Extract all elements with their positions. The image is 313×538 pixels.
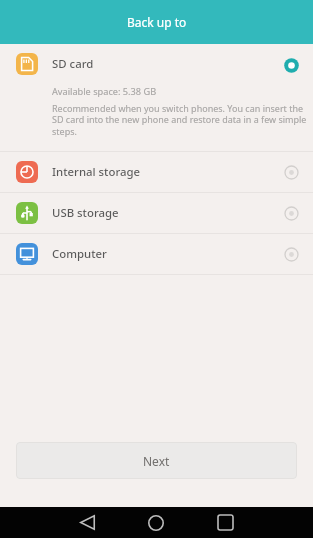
button[interactable]: Next bbox=[16, 442, 297, 479]
button[interactable]: SD card bbox=[0, 44, 313, 152]
staticText: Available space: 5.38 GB bbox=[52, 85, 157, 98]
staticText: Recommended when you switch phones. You … bbox=[52, 102, 307, 138]
staticText: USB storage bbox=[52, 205, 119, 221]
button[interactable]: Back bbox=[66, 507, 108, 538]
button[interactable]: Recent apps bbox=[204, 507, 246, 538]
staticText: SD card bbox=[52, 56, 94, 72]
staticText: Back up to bbox=[127, 14, 187, 30]
button[interactable]: USB storage bbox=[0, 193, 313, 233]
button[interactable]: Internal storage bbox=[0, 152, 313, 192]
staticText: Internal storage bbox=[52, 164, 141, 180]
staticText: Next bbox=[143, 453, 170, 469]
button[interactable]: Home bbox=[135, 507, 177, 538]
staticText: Computer bbox=[52, 246, 107, 262]
button[interactable]: Computer bbox=[0, 234, 313, 274]
